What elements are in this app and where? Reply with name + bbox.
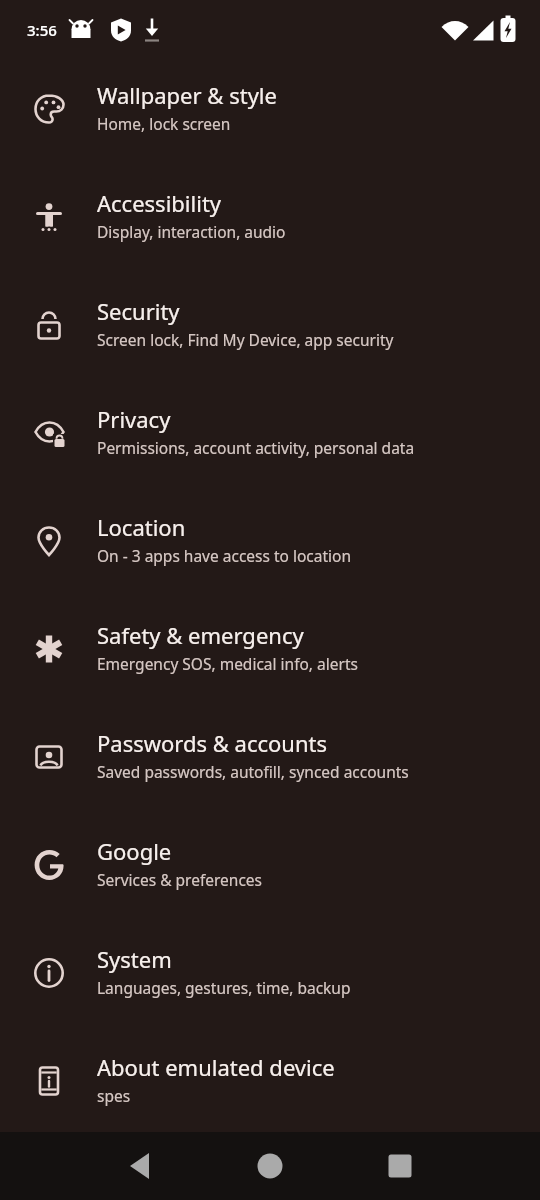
staticText: spes: [97, 1085, 131, 1106]
button[interactable]: Back: [104, 1132, 176, 1200]
button[interactable]: Google: [0, 833, 540, 941]
staticText: Services & preferences: [97, 869, 262, 890]
staticText: Accessibility: [97, 188, 222, 218]
staticText: Permissions, account activity, personal …: [97, 437, 415, 458]
staticText: Wallpaper & style: [97, 80, 277, 110]
staticText: Passwords & accounts: [97, 728, 328, 758]
staticText: Safety & emergency: [97, 620, 304, 650]
staticText: Home, lock screen: [97, 113, 231, 134]
staticText: Screen lock, Find My Device, app securit…: [97, 329, 394, 350]
staticText: On - 3 apps have access to location: [97, 545, 352, 566]
button[interactable]: System: [0, 941, 540, 1049]
staticText: Security: [97, 296, 180, 326]
button[interactable]: Privacy: [0, 401, 540, 509]
button[interactable]: Wallpaper & style: [0, 77, 540, 185]
staticText: Emergency SOS, medical info, alerts: [97, 653, 358, 674]
button[interactable]: Home: [234, 1132, 306, 1200]
staticText: System: [97, 944, 172, 974]
staticText: Saved passwords, autofill, synced accoun…: [97, 761, 409, 782]
staticText: Display, interaction, audio: [97, 221, 286, 242]
button[interactable]: Passwords & accounts: [0, 725, 540, 833]
button[interactable]: Accessibility: [0, 185, 540, 293]
button[interactable]: Recent apps: [364, 1132, 436, 1200]
staticText: Google: [97, 836, 172, 866]
staticText: 3:56: [27, 20, 57, 40]
button[interactable]: Location: [0, 509, 540, 617]
staticText: About emulated device: [97, 1052, 335, 1082]
button[interactable]: About emulated device: [0, 1049, 540, 1157]
staticText: Privacy: [97, 404, 171, 434]
button[interactable]: Safety & emergency: [0, 617, 540, 725]
staticText: Languages, gestures, time, backup: [97, 977, 351, 998]
staticText: Location: [97, 512, 186, 542]
button[interactable]: Security: [0, 293, 540, 401]
